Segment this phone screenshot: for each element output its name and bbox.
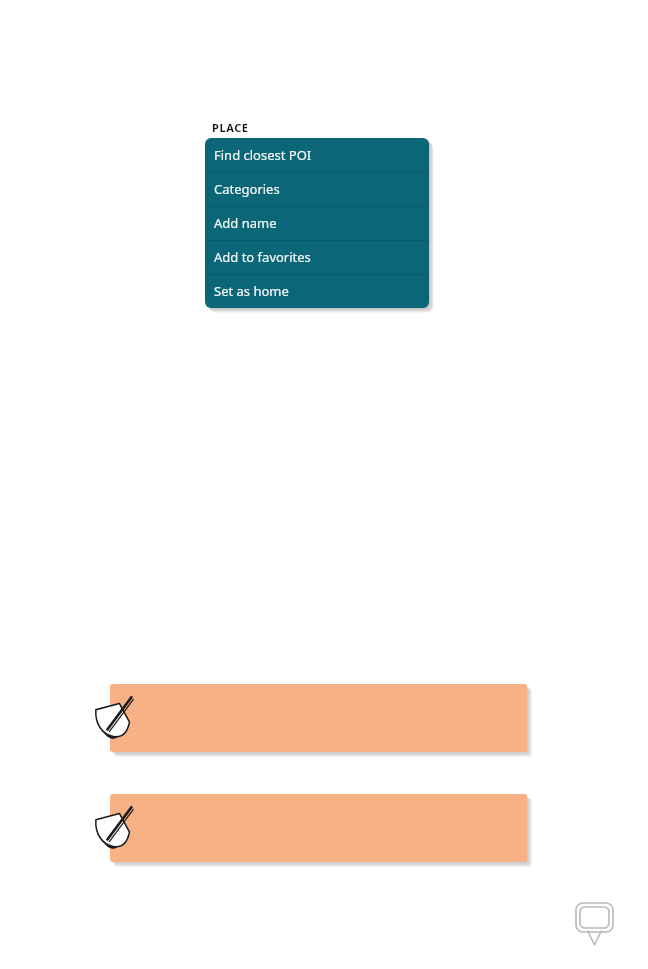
button[interactable]: Set as home (205, 274, 429, 308)
staticText: Categories (214, 180, 280, 198)
button[interactable]: Add name (205, 206, 429, 240)
staticText: Add name (214, 214, 277, 232)
other: Annotation (93, 692, 141, 744)
button[interactable]: Comment (576, 903, 616, 947)
button[interactable] (110, 684, 527, 752)
staticText: Set as home (214, 282, 289, 300)
other: Annotation (93, 802, 141, 854)
button[interactable]: Categories (205, 172, 429, 206)
staticText: Add to favorites (214, 248, 311, 266)
staticText: PLACE (212, 120, 249, 135)
button[interactable] (110, 794, 527, 862)
staticText: Find closest POI (214, 146, 312, 164)
button[interactable]: Find closest POI (205, 138, 429, 172)
button[interactable]: Add to favorites (205, 240, 429, 274)
